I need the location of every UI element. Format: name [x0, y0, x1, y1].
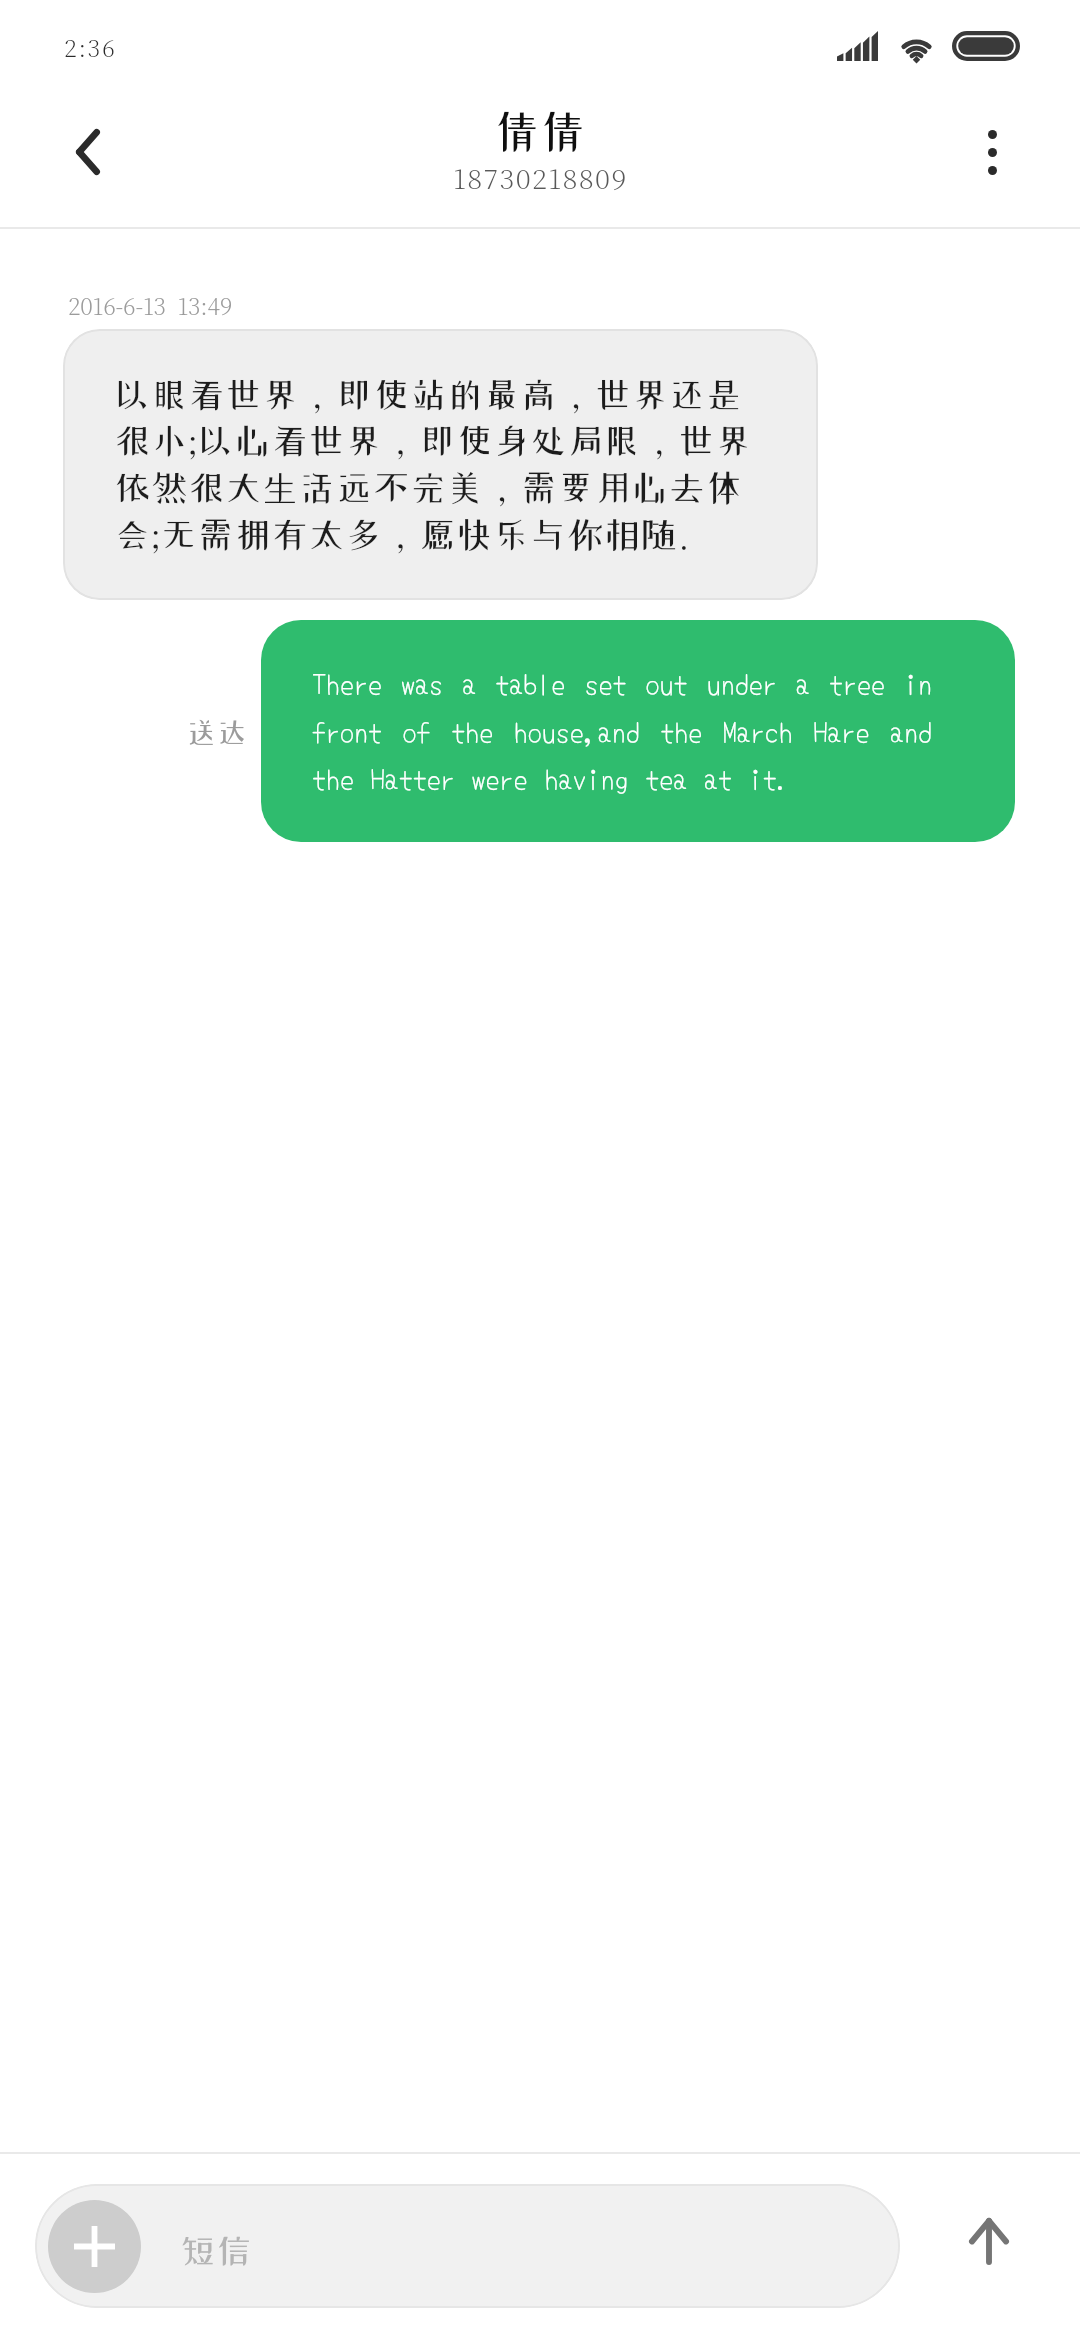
button[interactable]: More options	[936, 96, 1048, 208]
button[interactable]: There was a table set out under a tree i…	[261, 620, 1015, 842]
staticText: 送达	[186, 717, 248, 747]
staticText: 2:36	[64, 30, 117, 64]
button[interactable]: Add attachment	[35, 2184, 900, 2308]
staticText: 18730218809	[453, 157, 628, 197]
staticText: 以眼看世界，即使站的最高，世界还是很小;以心看世界，即使身处局限，世界依然很大生…	[114, 376, 759, 553]
button[interactable]: Add attachment	[48, 2200, 141, 2293]
button[interactable]: Send	[934, 2186, 1044, 2296]
button[interactable]: 以眼看世界，即使站的最高，世界还是很小;以心看世界，即使身处局限，世界依然很大生…	[63, 329, 818, 600]
staticText: 倩倩	[494, 108, 587, 153]
staticText: There was a table set out under a tree i…	[312, 663, 932, 798]
button[interactable]: Back	[32, 96, 144, 208]
staticText: 2016-6-13 13:49	[68, 289, 233, 322]
staticText: 短信	[179, 2232, 253, 2268]
